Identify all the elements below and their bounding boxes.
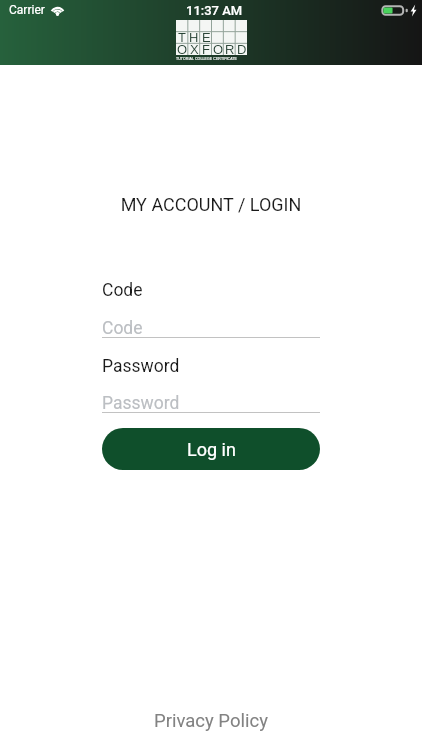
staticText: Password [102, 356, 180, 377]
staticText: Carrier [9, 3, 45, 17]
staticText: Password [102, 393, 180, 414]
staticText: R [225, 42, 235, 54]
staticText: MY ACCOUNT / LOGIN [0, 194, 422, 215]
staticText: X [190, 42, 199, 54]
other: Wi-Fi signal [50, 5, 65, 15]
button[interactable]: Log in [102, 428, 320, 470]
staticText: T [178, 30, 186, 42]
other: Battery charging [381, 5, 417, 16]
staticText: Privacy Policy [154, 710, 268, 732]
staticText: Code [102, 280, 143, 301]
staticText: H [189, 30, 199, 42]
staticText: 11:37 AM [186, 3, 243, 18]
staticText: D [237, 42, 247, 54]
staticText: F [202, 42, 210, 54]
staticText: Code [102, 318, 143, 339]
staticText: Log in [187, 439, 236, 460]
staticText: O [177, 42, 188, 54]
staticText: O [213, 42, 224, 54]
staticText: TUTORIAL COLLEGE CERTIFICATE [176, 57, 238, 61]
staticText: E [202, 30, 211, 42]
button[interactable]: Privacy Policy [140, 706, 282, 736]
